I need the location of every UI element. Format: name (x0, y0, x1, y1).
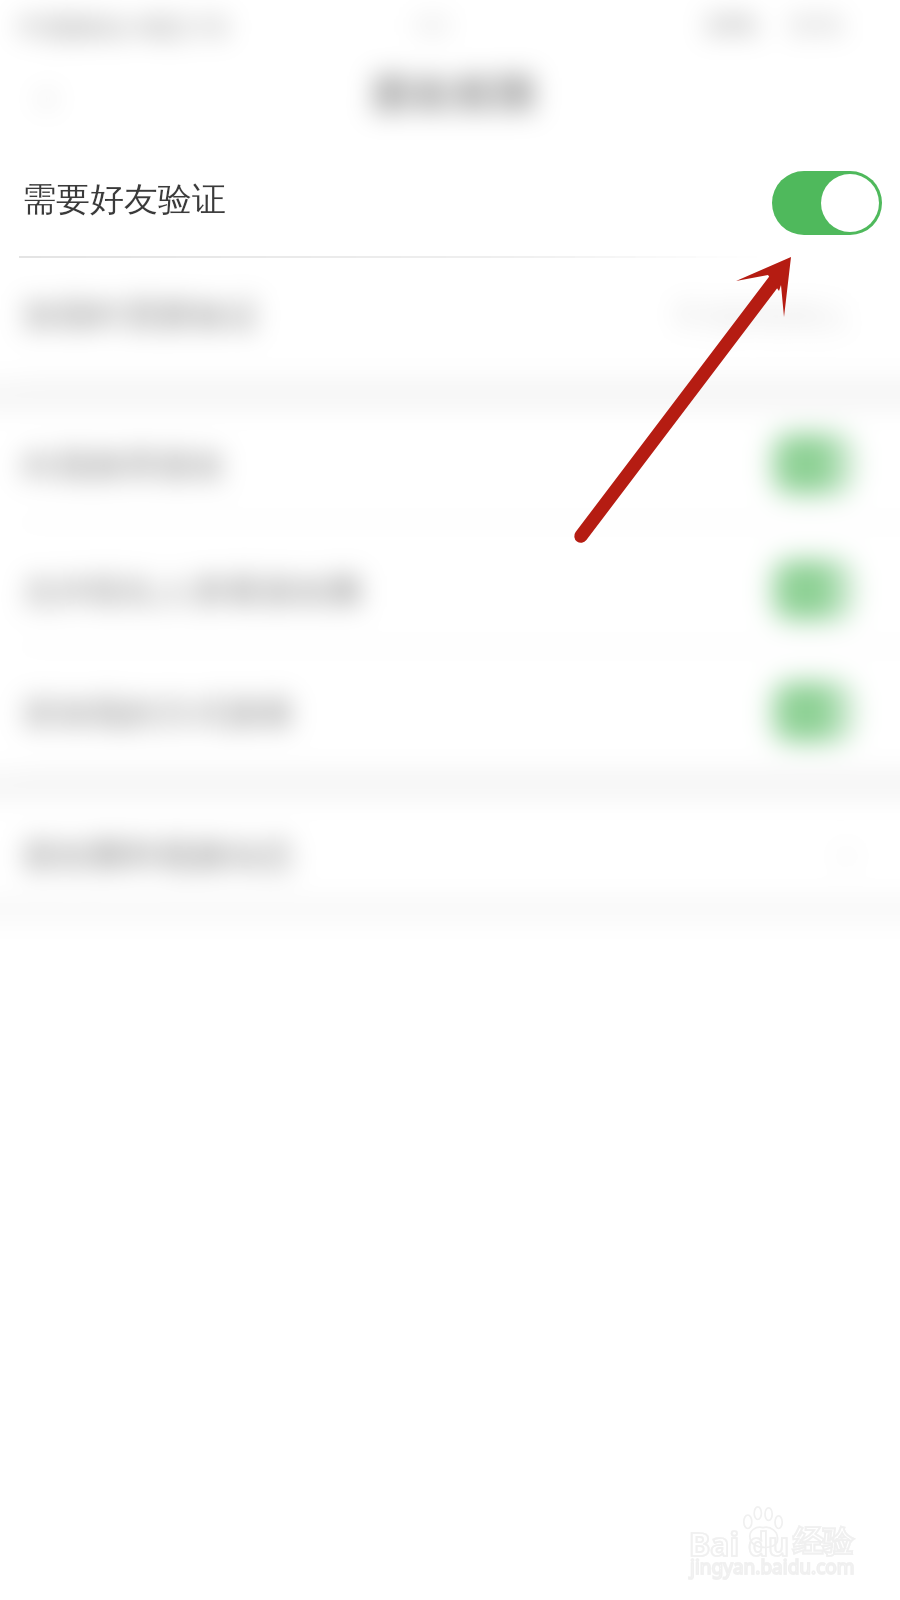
button[interactable]: 需要好友验证 (0, 146, 900, 259)
staticText: 添加我的方式搜索 (22, 692, 294, 735)
staticText: 不允许任何人 (674, 298, 848, 335)
button[interactable]: 朋友圈和视频动态 (0, 802, 900, 914)
staticText: 允许陌生人查看朋友圈 (22, 570, 362, 613)
staticText: du (748, 1522, 790, 1566)
button[interactable]: 添加我的方式 (0, 658, 900, 770)
staticText: 经验 (793, 1523, 853, 1561)
button[interactable]: 允许陌生人查看朋友圈 (0, 534, 900, 646)
staticText: 加我时需要验证 (22, 294, 260, 337)
staticText: 朋友权限 (370, 68, 538, 121)
staticText: 中国移动 4G (18, 8, 169, 45)
staticText: Bai (689, 1522, 740, 1566)
staticText: 朋友圈和视频动态 (22, 834, 294, 877)
button[interactable]: 向我推荐朋友 (0, 410, 900, 522)
button[interactable]: 加我时需要验证 (0, 268, 900, 380)
staticText: 22:10 (158, 8, 228, 45)
staticText: 34% (704, 6, 758, 43)
staticText: 需要好友验证 (22, 178, 226, 221)
button[interactable]: 需要好友验证 开关 (772, 171, 882, 235)
staticText: jingyan.baidu.com (690, 1554, 855, 1580)
staticText: 向我推荐朋友 (22, 444, 226, 487)
